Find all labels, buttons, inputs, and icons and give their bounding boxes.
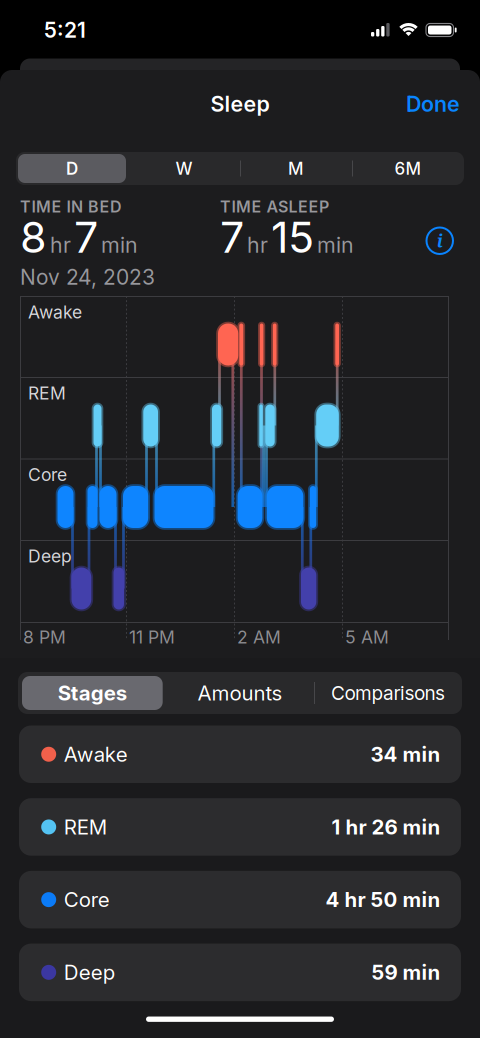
- staticText: Stages: [58, 681, 127, 705]
- staticText: Nov 24, 2023: [20, 264, 155, 290]
- staticText: Comparisons: [331, 681, 445, 704]
- staticText: 5:21: [44, 17, 86, 43]
- staticText: Awake: [28, 301, 82, 323]
- staticText: 15: [271, 211, 314, 263]
- staticText: 4 hr 50 min: [325, 887, 440, 912]
- staticText: 59 min: [371, 960, 440, 985]
- staticText: TIME IN BED: [20, 197, 122, 216]
- staticText: 8 PM: [23, 626, 66, 648]
- staticText: W: [175, 158, 192, 179]
- staticText: min: [317, 232, 354, 258]
- staticText: 5 AM: [345, 626, 389, 648]
- staticText: 2 AM: [237, 626, 281, 648]
- staticText: 1 hr 26 min: [331, 814, 440, 839]
- staticText: D: [66, 158, 78, 179]
- staticText: Deep: [64, 960, 115, 985]
- staticText: Core: [28, 464, 67, 485]
- staticText: M: [288, 158, 304, 179]
- staticText: 34 min: [370, 742, 440, 767]
- staticText: hr: [247, 232, 268, 258]
- button[interactable]: M: [242, 154, 350, 183]
- staticText: 11 PM: [129, 626, 175, 648]
- staticText: Sleep: [210, 91, 269, 117]
- staticText: Done: [406, 91, 460, 117]
- staticText: 7: [74, 211, 98, 263]
- button[interactable]: D: [18, 154, 126, 183]
- staticText: Awake: [64, 742, 128, 767]
- staticText: REM: [64, 814, 107, 839]
- staticText: hr: [50, 232, 71, 258]
- staticText: 8: [20, 211, 47, 263]
- staticText: min: [101, 232, 138, 258]
- staticText: i: [437, 229, 443, 252]
- staticText: 7: [220, 211, 244, 263]
- staticText: Core: [64, 887, 110, 912]
- staticText: REM: [28, 382, 66, 404]
- button[interactable]: Amounts: [166, 676, 314, 710]
- button[interactable]: i: [426, 227, 453, 254]
- staticText: TIME ASLEEP: [220, 197, 329, 216]
- button[interactable]: REM: [19, 798, 461, 856]
- button[interactable]: W: [130, 154, 238, 183]
- staticText: Deep: [28, 545, 72, 567]
- button[interactable]: Core: [19, 871, 461, 928]
- button[interactable]: 6M: [354, 154, 462, 183]
- button[interactable]: Awake: [19, 725, 461, 783]
- button[interactable]: Comparisons: [314, 676, 462, 710]
- button[interactable]: Stages: [22, 676, 163, 710]
- button[interactable]: Deep: [19, 944, 461, 1001]
- staticText: 6M: [394, 158, 421, 179]
- button[interactable]: Done: [406, 91, 460, 117]
- staticText: Amounts: [197, 681, 282, 705]
